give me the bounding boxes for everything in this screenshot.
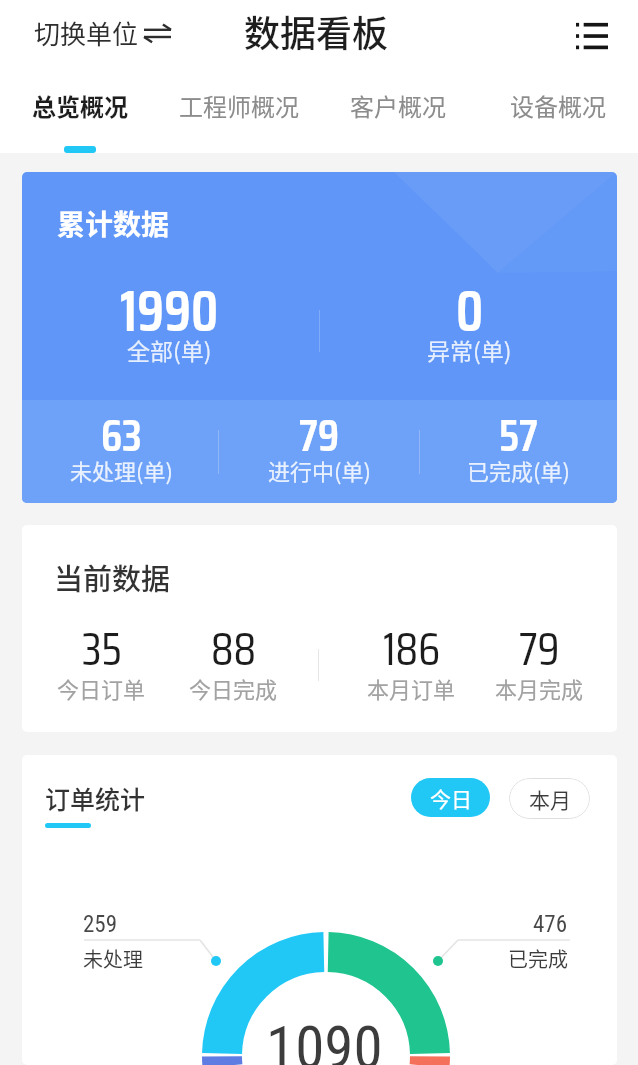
button[interactable]: 本月 [509,778,590,819]
staticText: 客户概况 [350,88,446,123]
staticText: 已完成 [508,944,568,973]
button[interactable]: 1990 [59,266,279,389]
staticText: 0 [456,266,484,356]
button[interactable]: 工程师概况 [159,76,318,153]
staticText: 259 [83,911,118,938]
staticText: 本月订单 [367,672,456,704]
button[interactable]: 客户概况 [318,76,478,153]
staticText: 79 [519,613,560,685]
button[interactable]: Menu [569,11,615,57]
staticText: 订单统计 [45,780,146,816]
staticText: 今日 [430,783,472,813]
staticText: 未处理 [83,944,143,973]
button[interactable]: 57 [418,400,617,503]
button[interactable]: 35 [31,613,171,717]
staticText: 总览概况 [32,88,128,123]
button[interactable]: 63 [22,400,221,503]
button[interactable]: 切换单位 [34,14,171,52]
staticText: 35 [82,613,122,685]
staticText: 进行中(单) [268,454,371,486]
staticText: 已完成(单) [467,454,570,486]
staticText: 设备概况 [510,88,606,123]
staticText: 57 [499,400,538,471]
staticText: 88 [211,613,257,685]
staticText: 全部(单) [127,333,212,366]
button[interactable]: 79 [469,613,609,717]
staticText: 今日订单 [57,672,146,704]
staticText: 未处理(单) [70,454,173,486]
staticText: 79 [299,400,340,471]
staticText: 工程师概况 [179,88,299,123]
staticText: 1090 [266,1013,383,1065]
staticText: 186 [383,613,441,685]
staticText: 1990 [120,266,219,356]
button[interactable]: 今日 [411,778,490,817]
button[interactable]: 总览概况 [0,76,159,153]
staticText: 累计数据 [57,203,170,244]
staticText: 63 [101,400,142,471]
button[interactable]: 186 [341,613,481,717]
staticText: 异常(单) [427,333,512,366]
button[interactable]: 0 [359,266,579,389]
staticText: 数据看板 [244,5,389,57]
staticText: 本月完成 [495,672,584,704]
button[interactable]: 79 [219,400,419,503]
button[interactable]: 设备概况 [478,76,638,153]
staticText: 476 [533,911,568,938]
staticText: 当前数据 [54,556,171,598]
staticText: 本月 [529,784,571,814]
staticText: 今日完成 [189,672,278,704]
staticText: 切换单位 [34,14,139,52]
button[interactable]: 88 [163,613,303,717]
